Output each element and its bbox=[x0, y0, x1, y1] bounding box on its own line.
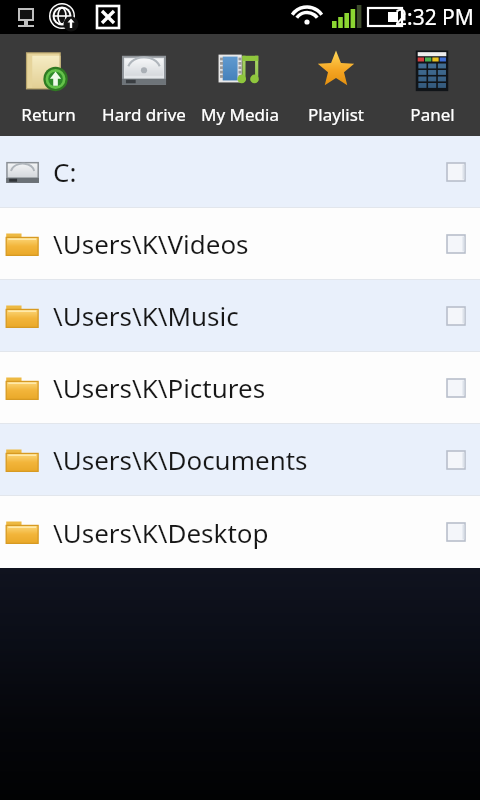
button[interactable]: Select \Users\K\Documents bbox=[447, 451, 465, 469]
button[interactable]: Playlist bbox=[288, 34, 384, 136]
button[interactable]: Return bbox=[0, 34, 96, 136]
staticText: My Media bbox=[201, 103, 279, 126]
staticText: \Users\K\Pictures bbox=[53, 370, 447, 405]
staticText: \Users\K\Music bbox=[53, 298, 447, 333]
button[interactable]: Select \Users\K\Pictures bbox=[447, 379, 465, 397]
staticText: C: bbox=[53, 154, 447, 189]
staticText: 2:32 PM bbox=[395, 3, 474, 32]
button[interactable]: Select \Users\K\Desktop bbox=[447, 523, 465, 541]
staticText: Return bbox=[21, 103, 76, 126]
button[interactable]: \Users\K\Videos bbox=[0, 208, 480, 279]
button[interactable]: C: bbox=[0, 136, 480, 207]
button[interactable]: \Users\K\Desktop bbox=[0, 496, 480, 568]
staticText: Playlist bbox=[308, 103, 364, 126]
button[interactable]: Select C: bbox=[447, 163, 465, 181]
button[interactable]: \Users\K\Music bbox=[0, 280, 480, 351]
staticText: \Users\K\Videos bbox=[53, 226, 447, 261]
staticText: \Users\K\Desktop bbox=[53, 515, 447, 550]
button[interactable]: \Users\K\Documents bbox=[0, 424, 480, 495]
button[interactable]: \Users\K\Pictures bbox=[0, 352, 480, 423]
button[interactable]: My Media bbox=[192, 34, 288, 136]
button[interactable]: Panel bbox=[384, 34, 480, 136]
button[interactable]: Hard drive bbox=[96, 34, 192, 136]
button[interactable]: Select \Users\K\Videos bbox=[447, 235, 465, 253]
button[interactable]: Select \Users\K\Music bbox=[447, 307, 465, 325]
staticText: Panel bbox=[410, 103, 455, 126]
staticText: Hard drive bbox=[102, 103, 186, 126]
staticText: \Users\K\Documents bbox=[53, 442, 447, 477]
